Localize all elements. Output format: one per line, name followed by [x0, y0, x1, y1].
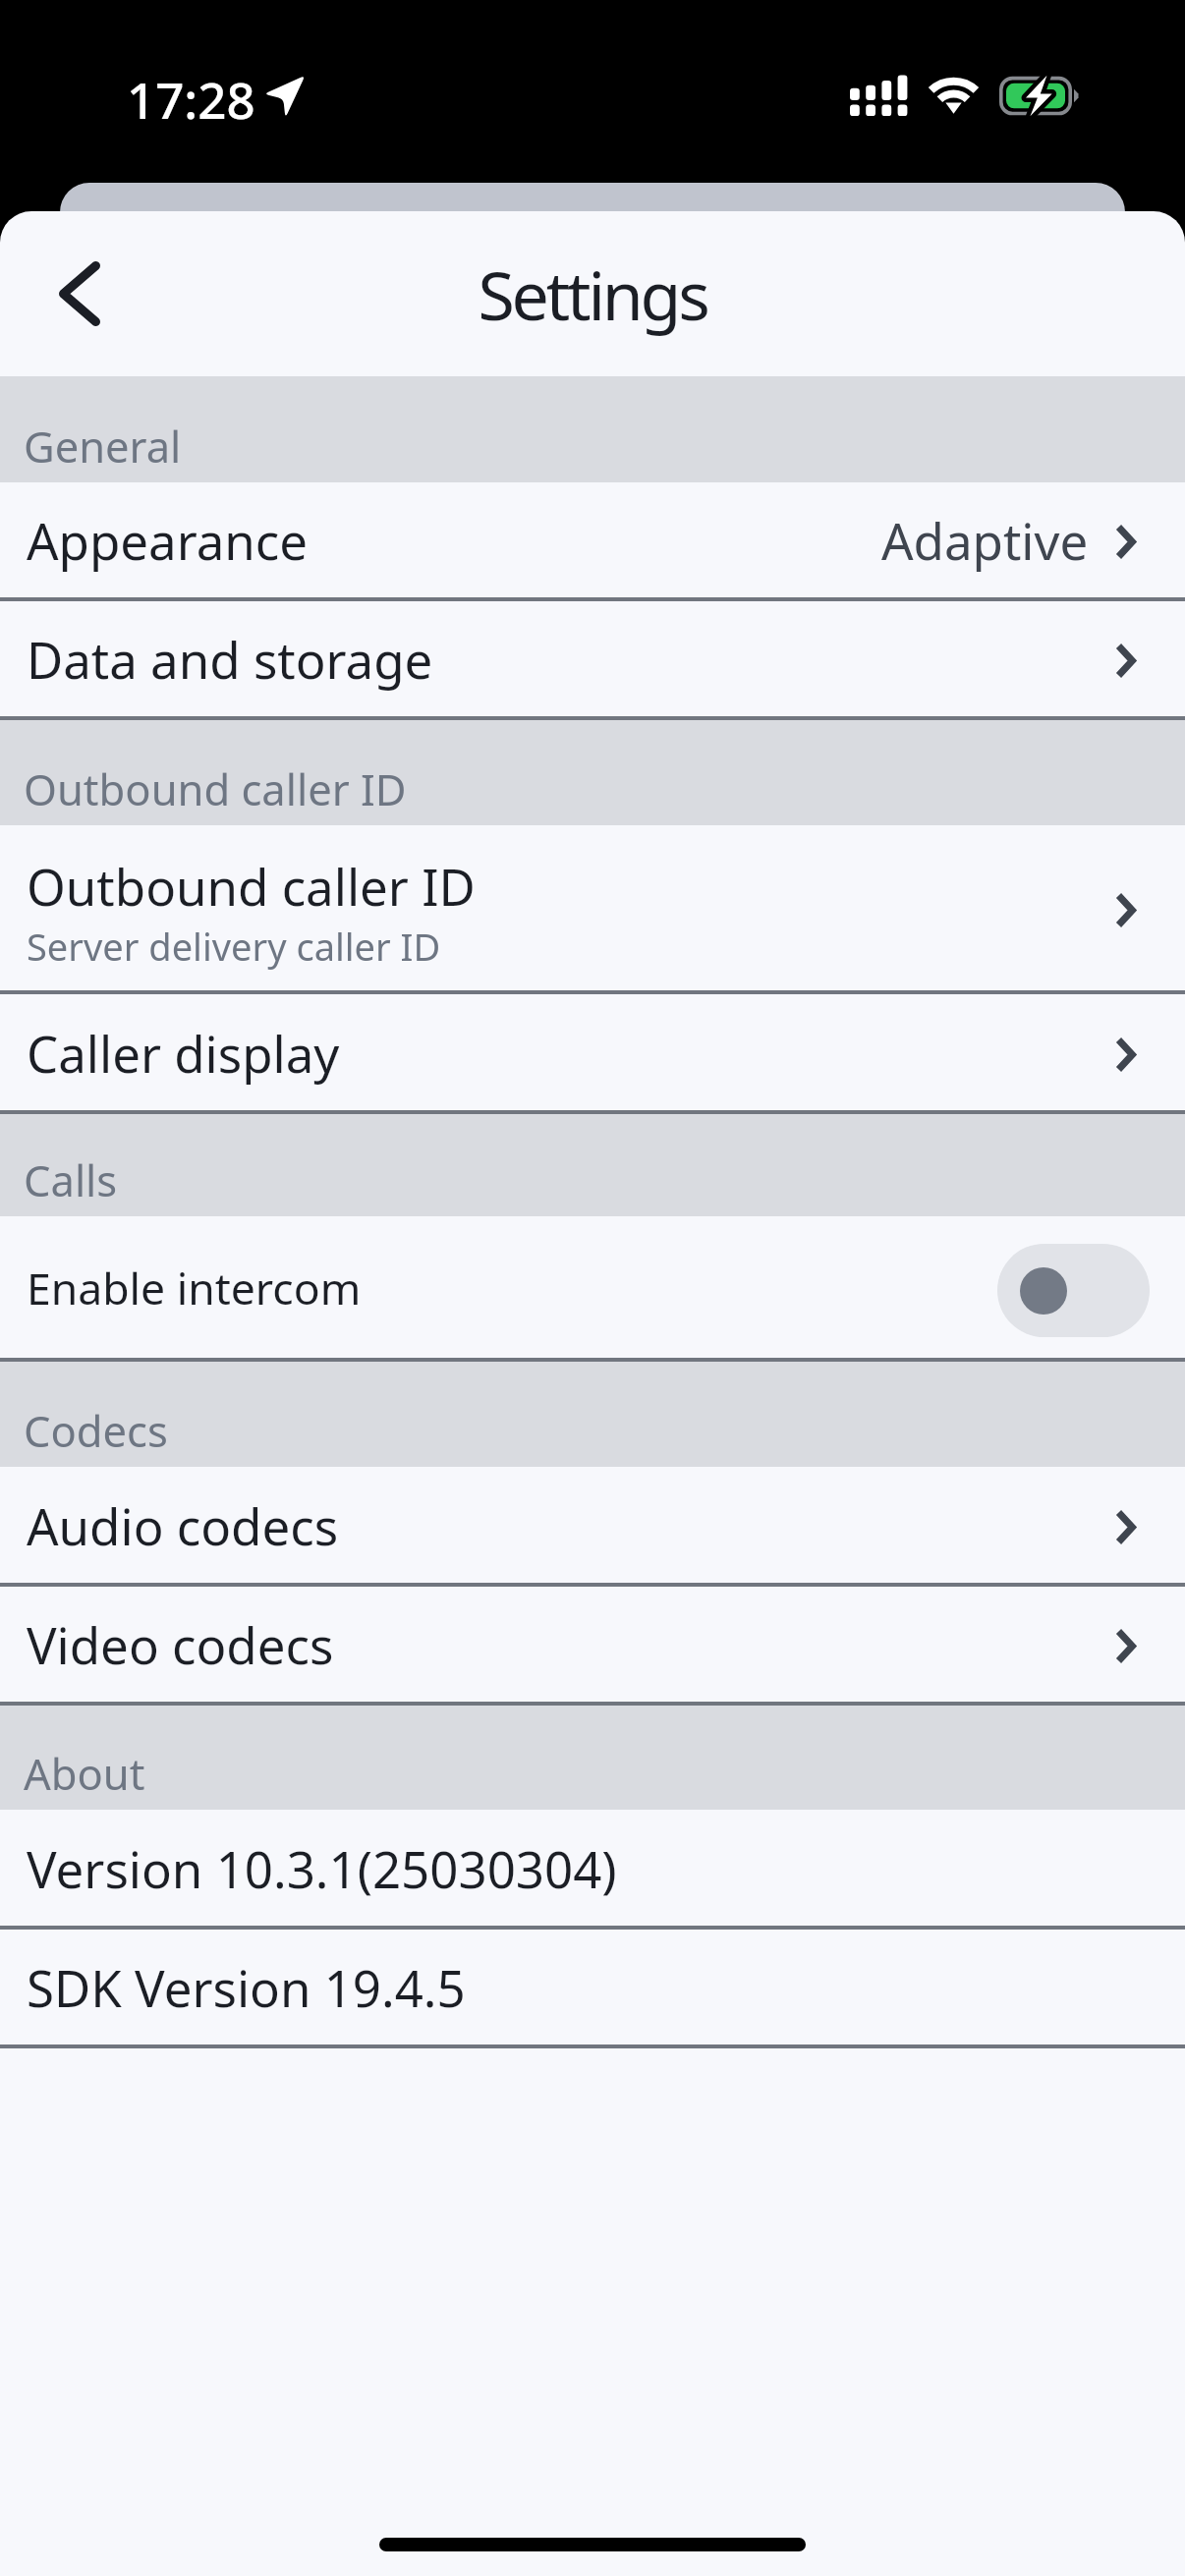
- staticText: 17:28: [127, 65, 255, 133]
- button[interactable]: Audio codecs: [0, 1467, 1185, 1583]
- button[interactable]: Enable intercom: [0, 1216, 1185, 1358]
- staticText: Outbound caller ID: [27, 852, 476, 920]
- button[interactable]: Back: [18, 232, 141, 356]
- staticText: Outbound caller ID: [24, 759, 407, 817]
- staticText: Version 10.3.1(25030304): [27, 1834, 617, 1902]
- button[interactable]: SDK Version 19.4.5: [0, 1930, 1185, 2044]
- staticText: SDK Version 19.4.5: [27, 1953, 466, 2021]
- staticText: Server delivery caller ID: [27, 921, 441, 972]
- staticText: Appearance: [27, 506, 309, 574]
- staticText: Adaptive: [881, 506, 1089, 574]
- button[interactable]: Version 10.3.1(25030304): [0, 1810, 1185, 1926]
- staticText: Audio codecs: [27, 1491, 339, 1559]
- staticText: Calls: [24, 1150, 118, 1208]
- button[interactable]: Outbound caller ID: [0, 825, 1185, 990]
- button[interactable]: Video codecs: [0, 1587, 1185, 1702]
- button[interactable]: Data and storage: [0, 601, 1185, 716]
- staticText: Caller display: [27, 1019, 340, 1087]
- staticText: Settings: [478, 249, 707, 340]
- button[interactable]: Appearance: [0, 482, 1185, 597]
- staticText: Video codecs: [27, 1610, 334, 1678]
- staticText: General: [24, 417, 182, 475]
- staticText: About: [24, 1744, 145, 1802]
- staticText: Enable intercom: [27, 1258, 997, 1317]
- staticText: Data and storage: [27, 625, 433, 693]
- button[interactable]: Caller display: [0, 994, 1185, 1110]
- staticText: Codecs: [24, 1401, 168, 1459]
